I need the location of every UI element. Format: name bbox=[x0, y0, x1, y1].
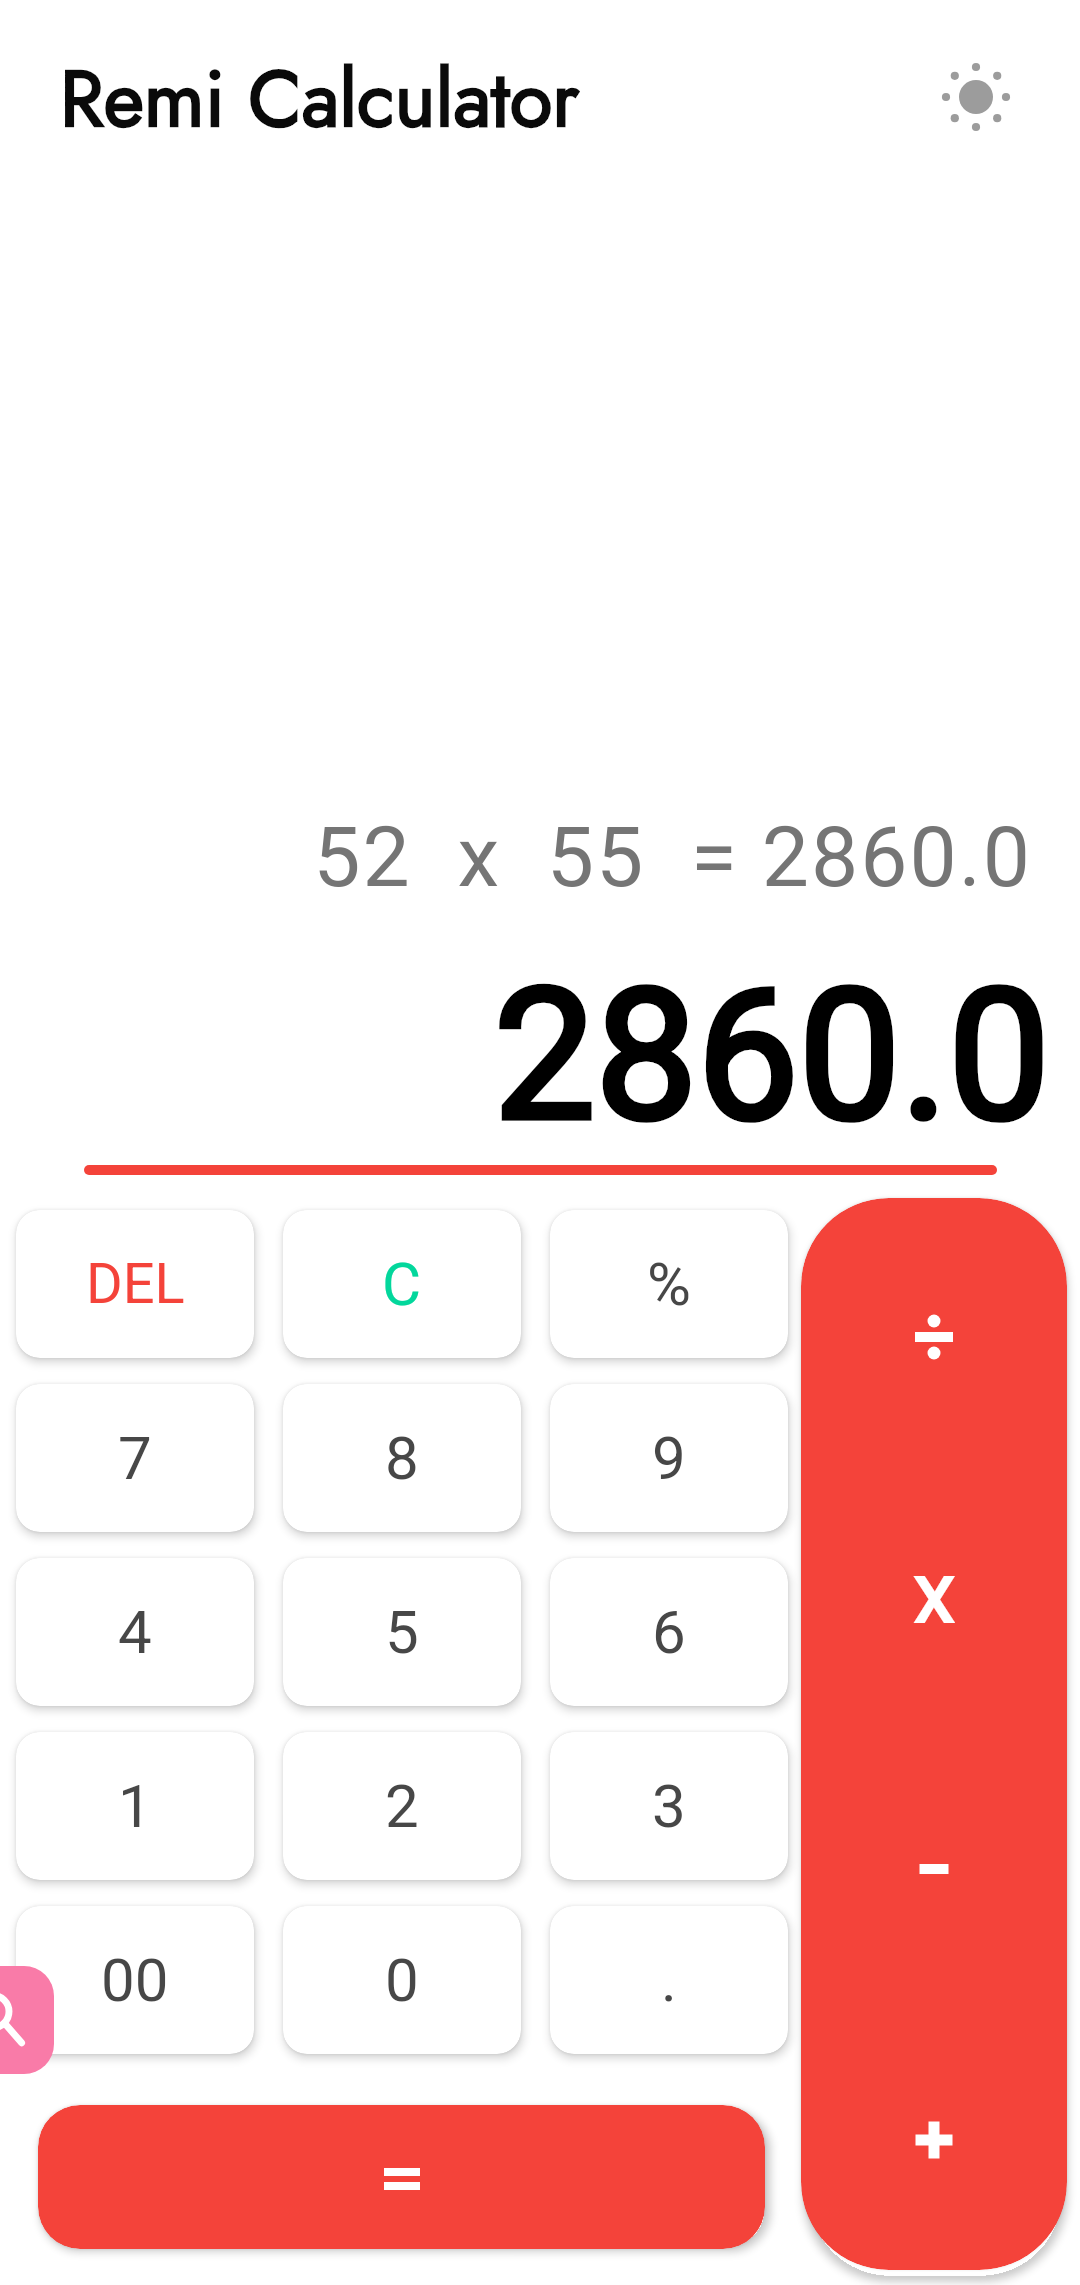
button[interactable]: 00 bbox=[16, 1906, 254, 2054]
staticText: 9 bbox=[652, 1423, 686, 1493]
staticText: 7 bbox=[118, 1423, 152, 1493]
button[interactable]: % bbox=[550, 1210, 788, 1358]
button[interactable]: 2 bbox=[283, 1732, 521, 1880]
button[interactable]: 6 bbox=[550, 1558, 788, 1706]
staticText: 0 bbox=[385, 1945, 419, 2015]
staticText: 5 bbox=[385, 1597, 419, 1667]
button[interactable]: 8 bbox=[283, 1384, 521, 1532]
staticText: 3 bbox=[652, 1771, 686, 1841]
button[interactable]: Subtract bbox=[801, 1730, 1067, 2008]
staticText: % bbox=[647, 1249, 691, 1319]
staticText: 8 bbox=[385, 1423, 419, 1493]
button[interactable]: 5 bbox=[283, 1558, 521, 1706]
staticText: 52 x 55 = 2860.0 bbox=[0, 808, 1032, 906]
staticText: 00 bbox=[101, 1945, 169, 2015]
staticText: 2 bbox=[385, 1771, 419, 1841]
button[interactable]: Add bbox=[801, 2008, 1067, 2270]
button[interactable]: Divide bbox=[801, 1207, 1067, 1467]
button[interactable]: . bbox=[550, 1906, 788, 2054]
button[interactable]: 1 bbox=[16, 1732, 254, 1880]
button[interactable]: Search bbox=[0, 1966, 54, 2074]
button[interactable]: 9 bbox=[550, 1384, 788, 1532]
staticText: Remi Calculator bbox=[60, 43, 580, 156]
staticText: X bbox=[911, 1552, 958, 1647]
button[interactable]: C bbox=[283, 1210, 521, 1358]
staticText: 6 bbox=[652, 1597, 686, 1667]
staticText: 4 bbox=[118, 1597, 152, 1667]
staticText: . bbox=[661, 1945, 677, 2015]
button[interactable]: Toggle brightness bbox=[917, 38, 1035, 156]
staticText: DEL bbox=[86, 1251, 185, 1317]
button[interactable]: Remi Calculator bbox=[60, 43, 580, 156]
staticText: 1 bbox=[118, 1771, 152, 1841]
button[interactable]: 3 bbox=[550, 1732, 788, 1880]
button[interactable]: 7 bbox=[16, 1384, 254, 1532]
button[interactable]: 0 bbox=[283, 1906, 521, 2054]
button[interactable]: Equals bbox=[38, 2105, 765, 2249]
button[interactable]: Multiply bbox=[801, 1459, 1067, 1739]
button[interactable]: 4 bbox=[16, 1558, 254, 1706]
staticText: 2860.0 bbox=[0, 950, 1050, 1162]
staticText: C bbox=[382, 1249, 422, 1319]
button[interactable]: DEL bbox=[16, 1210, 254, 1358]
